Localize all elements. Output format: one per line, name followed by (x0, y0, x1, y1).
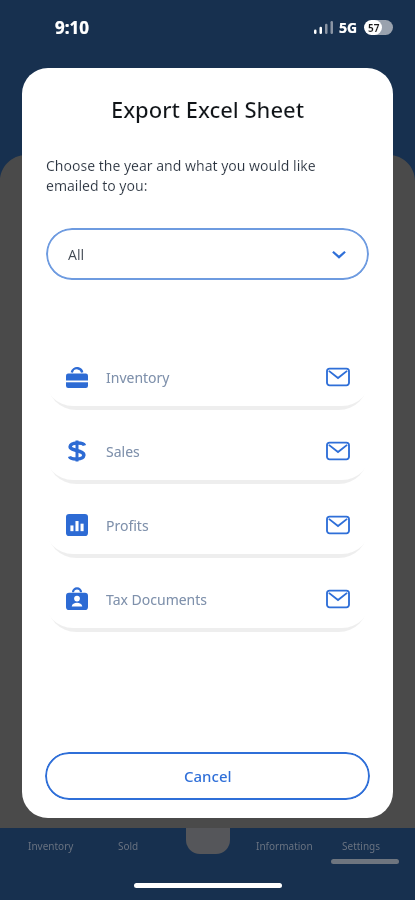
staticText: Inventory (106, 368, 170, 387)
staticText: Tax Documents (106, 590, 208, 609)
staticText: Cancel (184, 766, 232, 786)
staticText: Inventory (28, 839, 74, 853)
staticText: Export Excel Sheet (22, 94, 393, 124)
staticText: Choose the year and what you would like … (46, 156, 316, 195)
staticText: Sales (106, 442, 140, 461)
staticText: Profits (106, 516, 149, 535)
staticText: All (68, 245, 85, 264)
other: Email Sales (327, 440, 349, 462)
staticText: 9:10 (55, 16, 89, 39)
button[interactable]: All (46, 228, 369, 280)
button[interactable]: Sales (44, 422, 371, 480)
button[interactable]: Cancel (45, 752, 370, 800)
button[interactable]: Profits (44, 496, 371, 554)
staticText: Sold (118, 839, 139, 853)
staticText: 57 (368, 21, 380, 35)
other: Email Tax Documents (327, 588, 349, 610)
staticText: 5G (339, 18, 358, 37)
other: Email Inventory (327, 366, 349, 388)
button[interactable]: Inventory (44, 348, 371, 406)
button[interactable]: Tax Documents (44, 570, 371, 628)
staticText: Settings (342, 839, 381, 853)
staticText: Information (256, 839, 313, 853)
other: Email Profits (327, 514, 349, 536)
